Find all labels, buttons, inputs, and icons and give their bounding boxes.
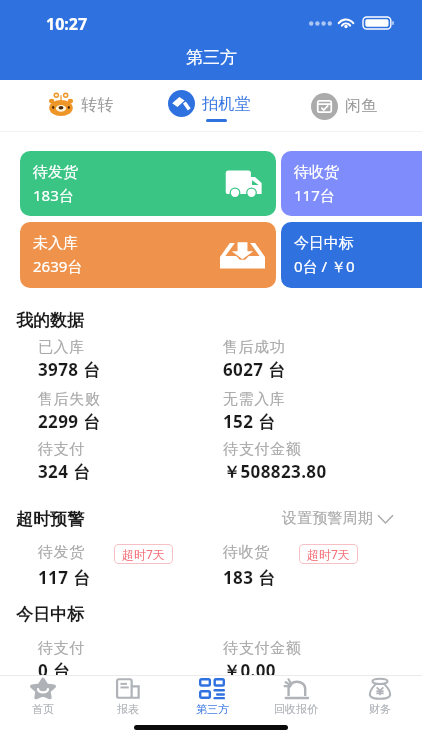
staticText: 待支付金额	[223, 639, 301, 658]
staticText: 无需入库	[223, 390, 286, 409]
staticText: 待收货	[294, 163, 339, 182]
staticText: 待支付金额	[223, 440, 301, 459]
staticText: 拍机堂	[202, 94, 251, 114]
staticText: ￥0.00	[223, 659, 276, 682]
staticText: 回收报价	[274, 702, 318, 716]
button[interactable]: 今日中标	[281, 222, 422, 288]
staticText: 10:27	[46, 13, 88, 35]
staticText: 售后成功	[223, 338, 286, 357]
staticText: 3978 台	[38, 358, 101, 381]
staticText: 0 台	[38, 659, 71, 682]
staticText: 117 台	[38, 566, 91, 589]
button[interactable]: 拍机堂	[168, 88, 251, 119]
staticText: 闲鱼	[345, 96, 378, 116]
staticText: 183台	[33, 185, 74, 205]
staticText: 我的数据	[16, 310, 84, 331]
button[interactable]: 报表	[85, 676, 170, 717]
button[interactable]: 第三方	[170, 676, 254, 717]
button[interactable]: 财务	[338, 676, 422, 717]
button[interactable]: 设置预警周期	[282, 509, 393, 528]
staticText: 报表	[117, 702, 139, 716]
staticText: 超时7天	[122, 546, 165, 562]
staticText: 今日中标	[16, 604, 84, 625]
staticText: 今日中标	[294, 234, 354, 253]
staticText: 超时预警	[16, 509, 84, 530]
staticText: 超时7天	[307, 546, 350, 562]
staticText: 0台 / ￥0	[294, 256, 355, 276]
staticText: 设置预警周期	[282, 509, 374, 528]
staticText: 未入库	[33, 234, 78, 253]
button[interactable]: 待发货	[20, 151, 276, 216]
staticText: 117台	[294, 185, 335, 205]
staticText: 183 台	[223, 566, 276, 589]
staticText: 6027 台	[223, 358, 286, 381]
button[interactable]: 转转	[46, 88, 115, 122]
staticText: 2639台	[33, 256, 83, 276]
staticText: 待发货	[38, 543, 85, 562]
staticText: 首页	[32, 702, 54, 716]
staticText: 财务	[369, 702, 391, 716]
button[interactable]: 待收货	[281, 151, 422, 216]
staticText: 2299 台	[38, 410, 101, 433]
staticText: 152 台	[223, 410, 276, 433]
staticText: ￥508823.80	[223, 460, 327, 483]
button[interactable]: 闲鱼	[311, 88, 378, 124]
staticText: 324 台	[38, 460, 91, 483]
staticText: 已入库	[38, 338, 85, 357]
staticText: 转转	[81, 95, 114, 115]
staticText: 待支付	[38, 440, 85, 459]
staticText: 待发货	[33, 163, 78, 182]
staticText: 待收货	[223, 543, 270, 562]
staticText: 第三方	[186, 47, 237, 68]
button[interactable]: 回收报价	[254, 676, 338, 717]
button[interactable]: 首页	[0, 676, 85, 717]
button[interactable]: 未入库	[20, 222, 276, 288]
staticText: 第三方	[196, 702, 229, 716]
staticText: 待支付	[38, 639, 85, 658]
staticText: 售后失败	[38, 390, 101, 409]
